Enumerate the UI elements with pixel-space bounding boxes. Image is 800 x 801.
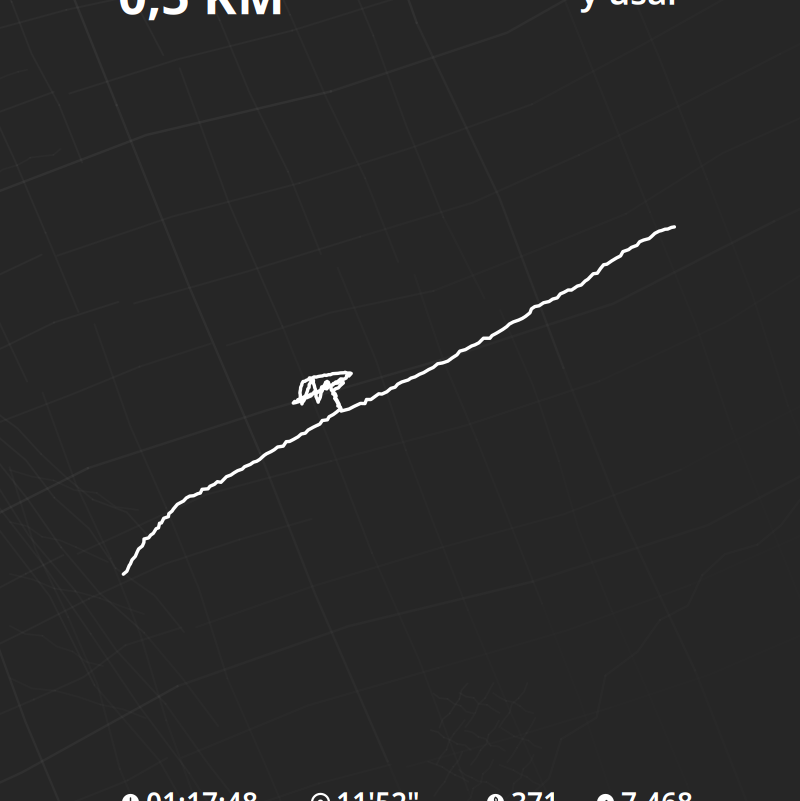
staticText: 7.468 <box>621 784 693 801</box>
staticText: 0,5 KM <box>118 0 285 28</box>
button[interactable]: 371 <box>487 784 559 801</box>
staticText: y usar <box>580 0 682 14</box>
staticText: 01:17:48 <box>146 784 258 801</box>
staticText: 11'52" <box>336 784 420 801</box>
button[interactable]: 01:17:48 <box>122 784 258 801</box>
staticText: 371 <box>511 784 559 801</box>
button[interactable]: 11'52" <box>312 784 420 801</box>
button[interactable]: 7.468 <box>597 784 693 801</box>
